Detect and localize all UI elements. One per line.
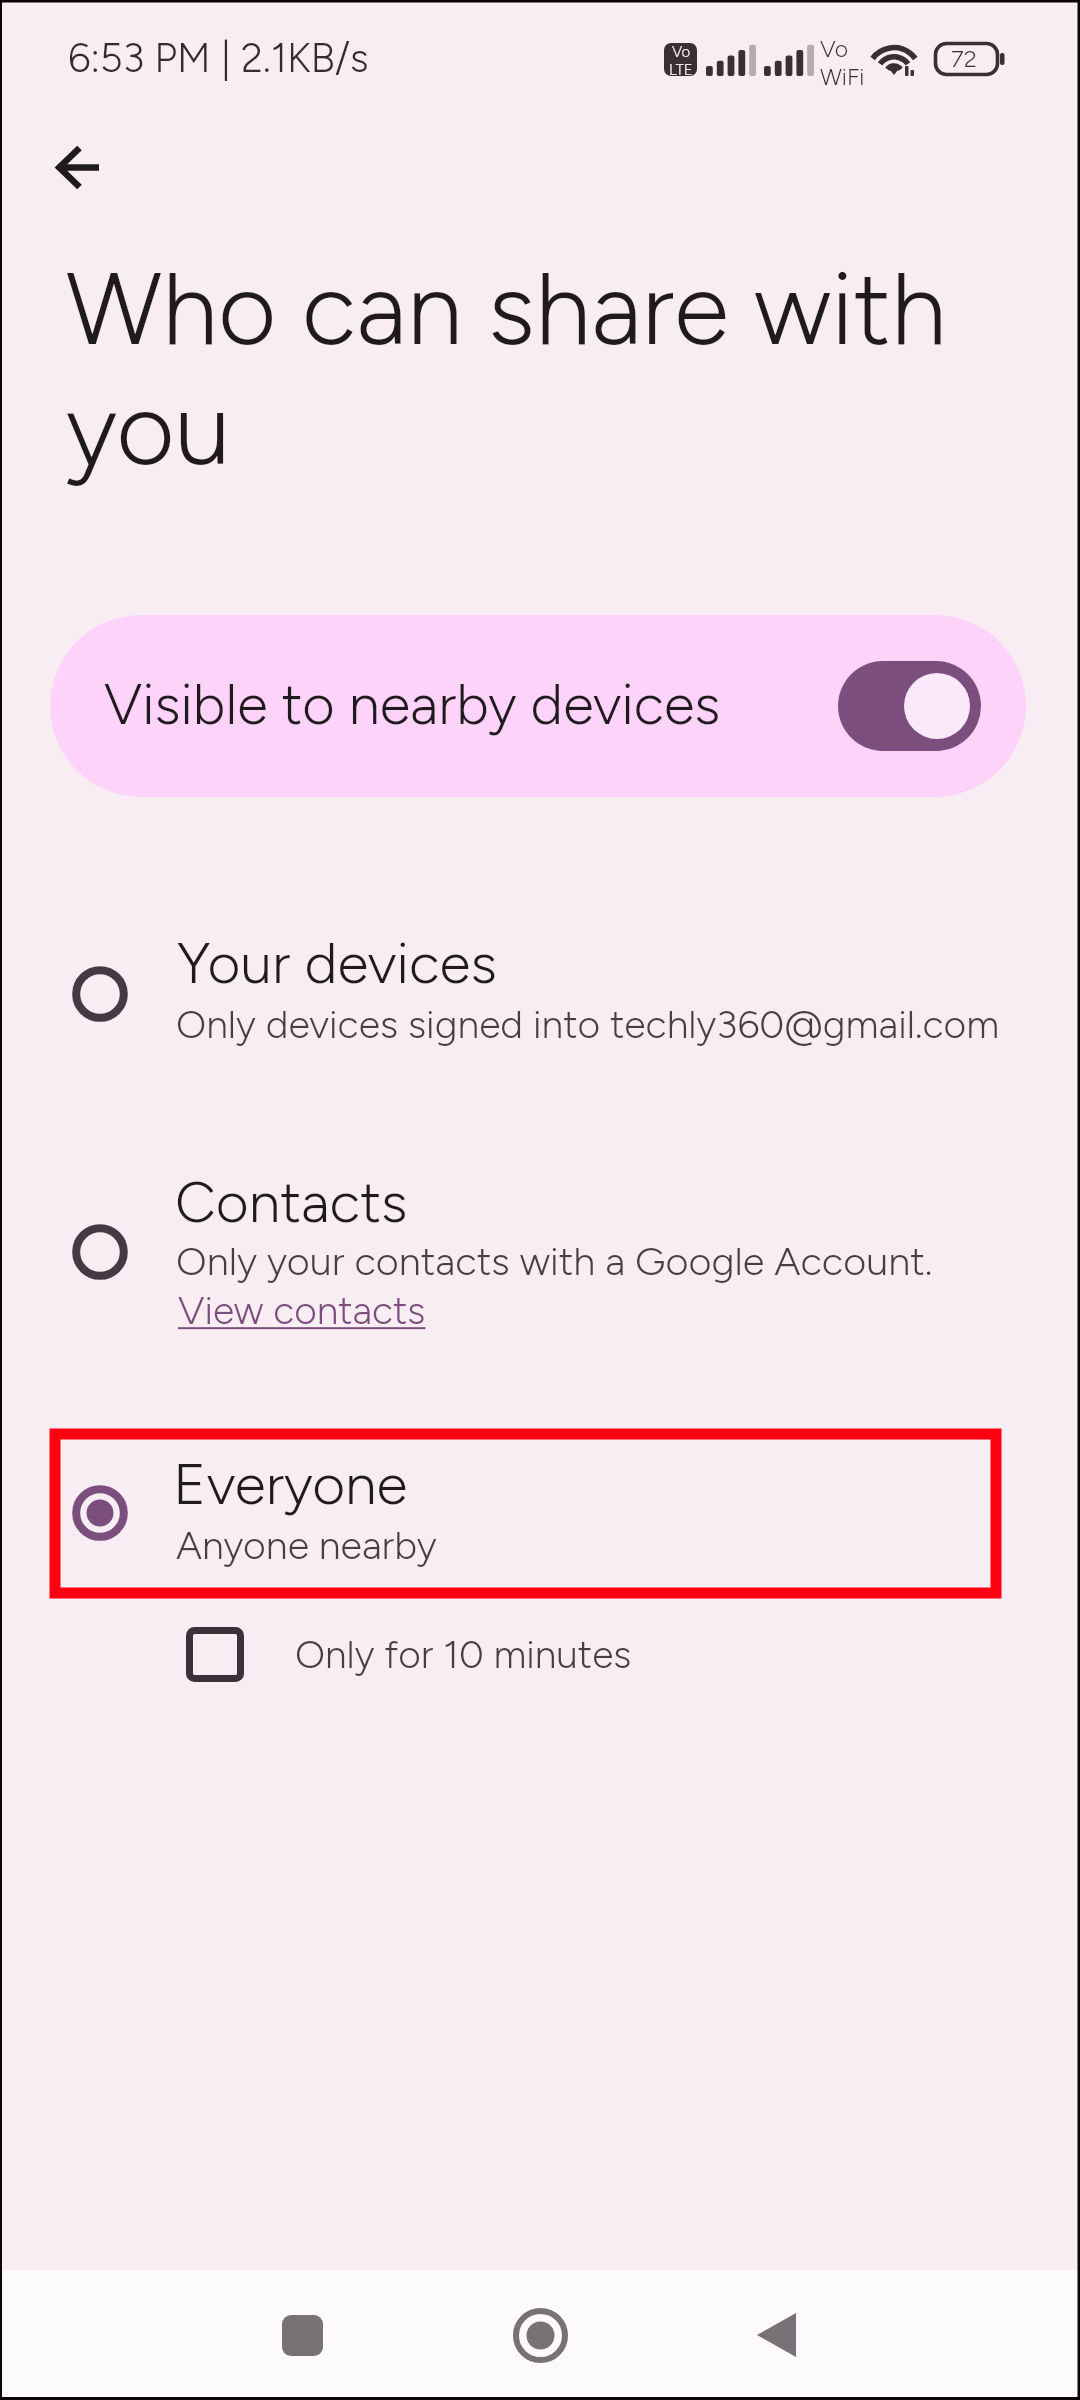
- staticText: Only for 10 minutes: [295, 1631, 632, 1678]
- button[interactable]: Your devices. Only devices signed into t…: [0, 930, 1080, 1060]
- button[interactable]: Only for 10 minutes: [170, 1610, 650, 1702]
- button[interactable]: Home: [480, 2275, 600, 2395]
- button[interactable]: Everyone. Anyone nearby. Selected: [0, 1440, 1080, 1590]
- staticText: 72: [951, 44, 977, 73]
- staticText: Vo: [820, 35, 849, 63]
- staticText: Everyone: [173, 1450, 408, 1518]
- staticText: LTE: [669, 61, 693, 76]
- button[interactable]: Visible to nearby devices: [50, 615, 1026, 797]
- button[interactable]: Back: [32, 122, 124, 214]
- staticText: 6:53 PM | 2.1KB/s: [68, 34, 369, 82]
- staticText: Visible to nearby devices: [104, 671, 721, 738]
- button[interactable]: View contacts: [178, 1287, 426, 1334]
- button[interactable]: Back: [716, 2275, 836, 2395]
- button[interactable]: Recent apps: [242, 2275, 362, 2395]
- staticText: WiFi: [820, 63, 865, 91]
- staticText: Your devices: [177, 929, 497, 997]
- staticText: Contacts: [175, 1168, 408, 1236]
- staticText: Who can share with you: [66, 248, 966, 489]
- staticText: Only devices signed into techly360@gmail…: [176, 1001, 1000, 1048]
- staticText: Only your contacts with a Google Account…: [176, 1237, 933, 1285]
- staticText: Anyone nearby: [176, 1522, 437, 1569]
- staticText: Vo: [672, 43, 691, 61]
- button[interactable]: Contacts. Only your contacts with a Goog…: [0, 1168, 1080, 1288]
